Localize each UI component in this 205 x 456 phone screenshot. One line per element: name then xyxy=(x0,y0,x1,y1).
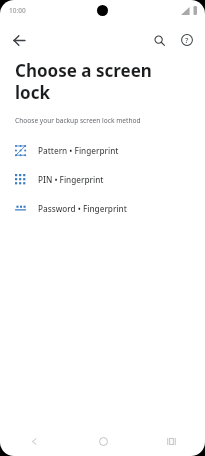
button[interactable]: Back xyxy=(0,426,69,456)
button[interactable]: Search xyxy=(145,26,173,54)
staticText: 10:00 xyxy=(9,6,26,15)
button[interactable]: Recent apps xyxy=(137,426,205,456)
staticText: PIN • Fingerprint xyxy=(38,174,104,185)
staticText: Choose a screen lock xyxy=(15,59,183,104)
staticText: Choose your backup screen lock method xyxy=(15,116,141,125)
button[interactable]: PIN • Fingerprint xyxy=(0,165,205,194)
staticText: Password • Fingerprint xyxy=(38,203,127,214)
button[interactable]: Password • Fingerprint xyxy=(0,194,205,223)
button[interactable]: Home xyxy=(69,426,137,456)
button[interactable]: Help xyxy=(173,26,201,54)
staticText: ? xyxy=(185,35,189,45)
button[interactable]: Back xyxy=(4,25,34,55)
button[interactable]: Pattern • Fingerprint xyxy=(0,136,205,165)
staticText: Pattern • Fingerprint xyxy=(38,145,119,156)
